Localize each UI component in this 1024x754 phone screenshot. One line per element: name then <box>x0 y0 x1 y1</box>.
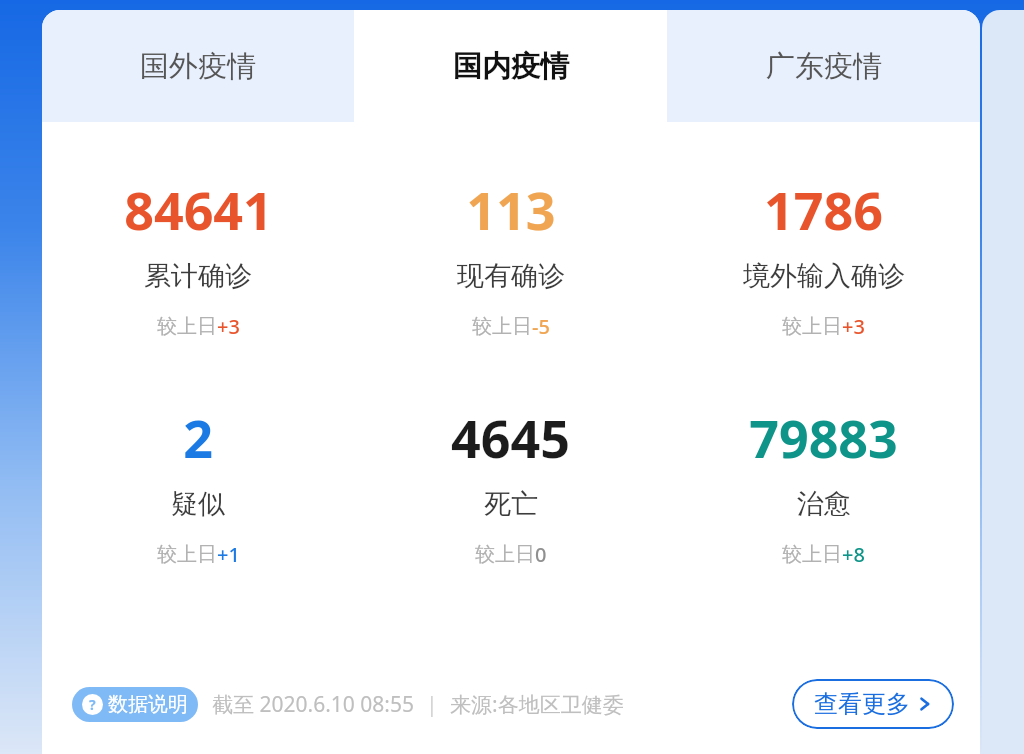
staticText: 死亡 <box>484 487 538 521</box>
staticText: 现有确诊 <box>457 259 565 293</box>
staticText: 较上日 <box>157 314 217 339</box>
staticText: 治愈 <box>797 487 851 521</box>
button[interactable]: ? <box>72 687 198 722</box>
staticText: +3 <box>217 313 240 340</box>
button[interactable]: 广东疫情 <box>667 10 980 122</box>
staticText: +8 <box>842 541 865 568</box>
staticText: 广东疫情 <box>766 48 882 85</box>
button[interactable]: 4645 <box>354 402 667 568</box>
staticText: 0 <box>535 541 547 568</box>
staticText: 2 <box>183 402 213 473</box>
staticText: 较上日 <box>157 542 217 567</box>
staticText: 疑似 <box>171 487 225 521</box>
staticText: 较上日 <box>782 542 842 567</box>
staticText: 国内疫情 <box>453 48 569 85</box>
button[interactable]: 国外疫情 <box>42 10 354 122</box>
staticText: +1 <box>217 541 240 568</box>
staticText: 截至 2020.6.10 08:55 <box>212 690 414 719</box>
staticText: 查看更多 <box>814 689 910 719</box>
staticText: 113 <box>466 174 556 245</box>
staticText: 国外疫情 <box>140 48 256 85</box>
staticText: -5 <box>532 313 550 340</box>
staticText: ? <box>89 695 96 714</box>
button[interactable]: 84641 <box>42 174 354 340</box>
staticText: +3 <box>842 313 865 340</box>
staticText: 境外输入确诊 <box>743 259 905 293</box>
staticText: 较上日 <box>472 314 532 339</box>
staticText: 数据说明 <box>108 692 188 717</box>
button[interactable]: 国内疫情 <box>354 10 667 122</box>
staticText: 1786 <box>764 174 883 245</box>
staticText: 79883 <box>749 402 898 473</box>
staticText: | <box>426 690 438 719</box>
button[interactable]: 2 <box>42 402 354 568</box>
staticText: 累计确诊 <box>144 259 252 293</box>
button[interactable]: 113 <box>354 174 667 340</box>
button[interactable]: 查看更多 <box>792 679 954 729</box>
staticText: 来源:各地区卫健委 <box>450 690 624 719</box>
button[interactable]: 1786 <box>667 174 980 340</box>
staticText: 84641 <box>124 174 273 245</box>
staticText: 较上日 <box>782 314 842 339</box>
button[interactable]: 79883 <box>667 402 980 568</box>
staticText: 4645 <box>451 402 570 473</box>
staticText: 较上日 <box>475 542 535 567</box>
